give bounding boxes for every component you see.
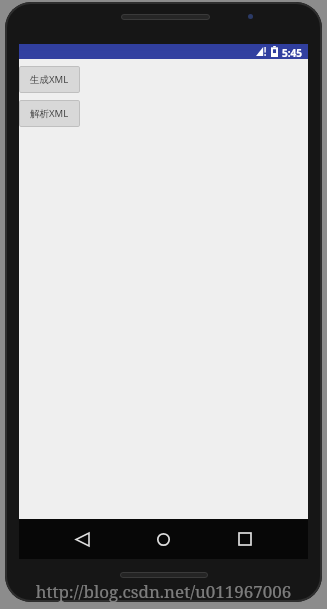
button[interactable]: 生成XML xyxy=(19,66,80,93)
button[interactable]: Home xyxy=(144,527,182,551)
button[interactable]: Back xyxy=(63,527,101,551)
staticText: 5:45 xyxy=(282,46,302,60)
button[interactable]: Recent apps xyxy=(226,527,264,551)
button[interactable]: 解析XML xyxy=(19,100,80,127)
staticText: 解析XML xyxy=(30,107,69,120)
staticText: http://blog.csdn.net/u011967006 xyxy=(6,580,321,604)
staticText: 生成XML xyxy=(30,73,69,86)
